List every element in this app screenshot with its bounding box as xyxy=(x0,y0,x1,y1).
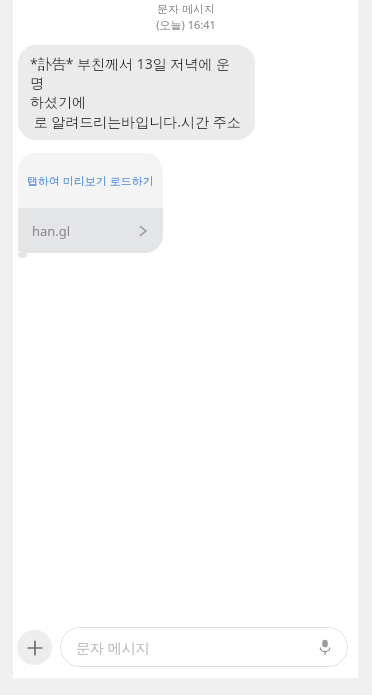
button[interactable]: 탭하여 미리보기 로드하기 xyxy=(18,153,163,253)
staticText: *訃告* 부친께서 13일 저녁에 운명 하셨기에 로 알려드리는바입니다.시간… xyxy=(30,54,243,131)
staticText: (오늘) 16:41 xyxy=(156,17,216,32)
staticText: 탭하여 미리보기 로드하기 xyxy=(27,173,154,188)
button[interactable]: Add attachment xyxy=(17,630,52,665)
button[interactable]: Voice input xyxy=(314,636,336,658)
staticText: 문자 메시지 xyxy=(76,638,314,657)
staticText: 문자 메시지 xyxy=(157,1,215,16)
staticText: han.gl xyxy=(32,222,71,240)
button[interactable]: 문자 메시지 xyxy=(60,627,348,667)
button[interactable]: *訃告* 부친께서 13일 저녁에 운명 하셨기에 로 알려드리는바입니다.시간… xyxy=(18,45,255,140)
